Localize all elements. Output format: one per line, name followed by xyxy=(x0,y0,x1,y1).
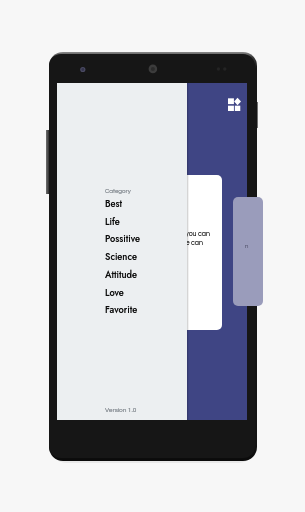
staticText: Attitude xyxy=(105,268,137,281)
staticText: Favorite xyxy=(105,303,138,316)
button[interactable]: Science xyxy=(57,247,187,265)
staticText: Version 1.0 xyxy=(105,407,137,414)
staticText: Love xyxy=(105,286,124,299)
staticText: Category xyxy=(105,188,131,194)
staticText: Best xyxy=(105,197,123,210)
button[interactable]: Love xyxy=(57,283,187,301)
staticText: Version 1.0 xyxy=(105,407,137,414)
staticText: Possitive xyxy=(105,232,140,245)
button[interactable]: Whether you think you can xyxy=(78,175,222,330)
staticText: Favorite xyxy=(105,303,138,316)
button[interactable]: Widgets xyxy=(223,93,245,115)
staticText: Science xyxy=(105,250,137,263)
staticText: Attitude xyxy=(105,268,137,281)
staticText: Possitive xyxy=(105,232,140,245)
staticText: Love xyxy=(105,286,124,299)
button[interactable]: Possitive xyxy=(57,229,187,247)
staticText: Life xyxy=(105,215,120,228)
button[interactable]: Attitude xyxy=(57,265,187,283)
staticText: Science xyxy=(105,250,137,263)
button[interactable]: Life xyxy=(57,212,187,230)
button[interactable]: Favorite xyxy=(57,300,187,318)
staticText: do anything one can xyxy=(78,239,203,246)
button[interactable]: Best xyxy=(57,194,187,212)
staticText: Whether you think you can xyxy=(78,230,210,237)
staticText: Whether you think you can xyxy=(78,230,210,237)
staticText: n xyxy=(245,243,249,249)
staticText: Life xyxy=(105,215,120,228)
staticText: Best xyxy=(105,197,123,210)
staticText: Category xyxy=(105,188,131,194)
staticText: do anything one can xyxy=(78,239,203,246)
